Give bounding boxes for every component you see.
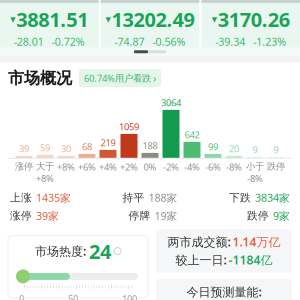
staticText: +6% <box>78 161 96 173</box>
staticText: 39 <box>19 142 29 155</box>
staticText: 较上一日: <box>175 252 226 268</box>
staticText: 24 <box>89 238 111 264</box>
staticText: 9家 <box>273 209 290 223</box>
staticText: -1.23% <box>253 34 286 49</box>
staticText: 持平 <box>122 191 144 204</box>
staticText: -4% <box>184 161 200 173</box>
staticText: 3834家 <box>255 191 290 205</box>
button[interactable]: 60.74%用户看跌 <box>79 69 161 87</box>
staticText: +8% <box>36 172 54 185</box>
staticText: 跌停 <box>247 209 269 222</box>
staticText: -8% <box>247 172 263 185</box>
staticText: 50 <box>68 292 78 300</box>
staticText: 市场热度: <box>35 243 86 259</box>
staticText: 219 <box>100 136 115 149</box>
staticText: 30 <box>61 142 71 155</box>
staticText: -8% <box>226 161 242 173</box>
staticText: 20 <box>229 142 239 155</box>
staticText: ▾ <box>105 13 110 25</box>
staticText: 1435家 <box>36 191 71 205</box>
staticText: › <box>153 71 156 85</box>
staticText: 涨停 <box>10 209 32 222</box>
staticText: -28.01 <box>14 34 44 49</box>
staticText: 小于 <box>246 161 264 172</box>
staticText: -1184亿 <box>228 252 272 268</box>
staticText: -0.72% <box>52 34 85 49</box>
staticText: 0 <box>19 292 24 300</box>
staticText: -6% <box>205 161 221 173</box>
button[interactable]: 市场热度: <box>8 236 148 298</box>
staticText: -0.56% <box>152 34 185 49</box>
staticText: 0% <box>143 161 156 173</box>
staticText: 39家 <box>36 209 59 223</box>
staticText: 两市成交额: <box>167 234 230 250</box>
staticText: 9 <box>273 143 278 156</box>
staticText: 13202.49 <box>111 6 194 32</box>
staticText: 59 <box>40 141 50 154</box>
staticText: 3064 <box>161 96 181 109</box>
staticText: 涨停 <box>15 161 33 172</box>
staticText: 19家 <box>154 209 177 223</box>
staticText: 3170.26 <box>218 6 290 32</box>
staticText: +4% <box>99 161 117 173</box>
staticText: 跌停 <box>267 161 285 172</box>
staticText: +8% <box>57 161 75 173</box>
staticText: -39.34 <box>215 34 245 49</box>
staticText: 100 <box>122 292 137 300</box>
staticText: 642 <box>184 128 199 141</box>
staticText: 188 <box>142 139 157 152</box>
staticText: 停牌 <box>128 209 150 222</box>
staticText: 大于 <box>36 161 54 172</box>
staticText: 188家 <box>148 191 177 205</box>
staticText: 1059 <box>119 120 139 133</box>
staticText: 下跌 <box>229 191 251 204</box>
staticText: -74.87 <box>114 34 144 49</box>
staticText: +2% <box>120 161 138 173</box>
staticText: 上涨 <box>10 191 32 204</box>
staticText: -2% <box>163 161 179 173</box>
staticText: 1.14万亿 <box>232 234 280 250</box>
staticText: 市场概况 <box>8 68 72 88</box>
staticText: 3881.51 <box>16 6 88 32</box>
staticText: 68 <box>82 140 92 153</box>
staticText: 9 <box>252 143 257 156</box>
staticText: 今日预测量能: <box>186 284 261 300</box>
staticText: ▾ <box>10 13 15 25</box>
staticText: ▾ <box>212 13 217 25</box>
staticText: 60.74%用户看跌 <box>84 72 151 84</box>
staticText: 99 <box>208 140 218 153</box>
